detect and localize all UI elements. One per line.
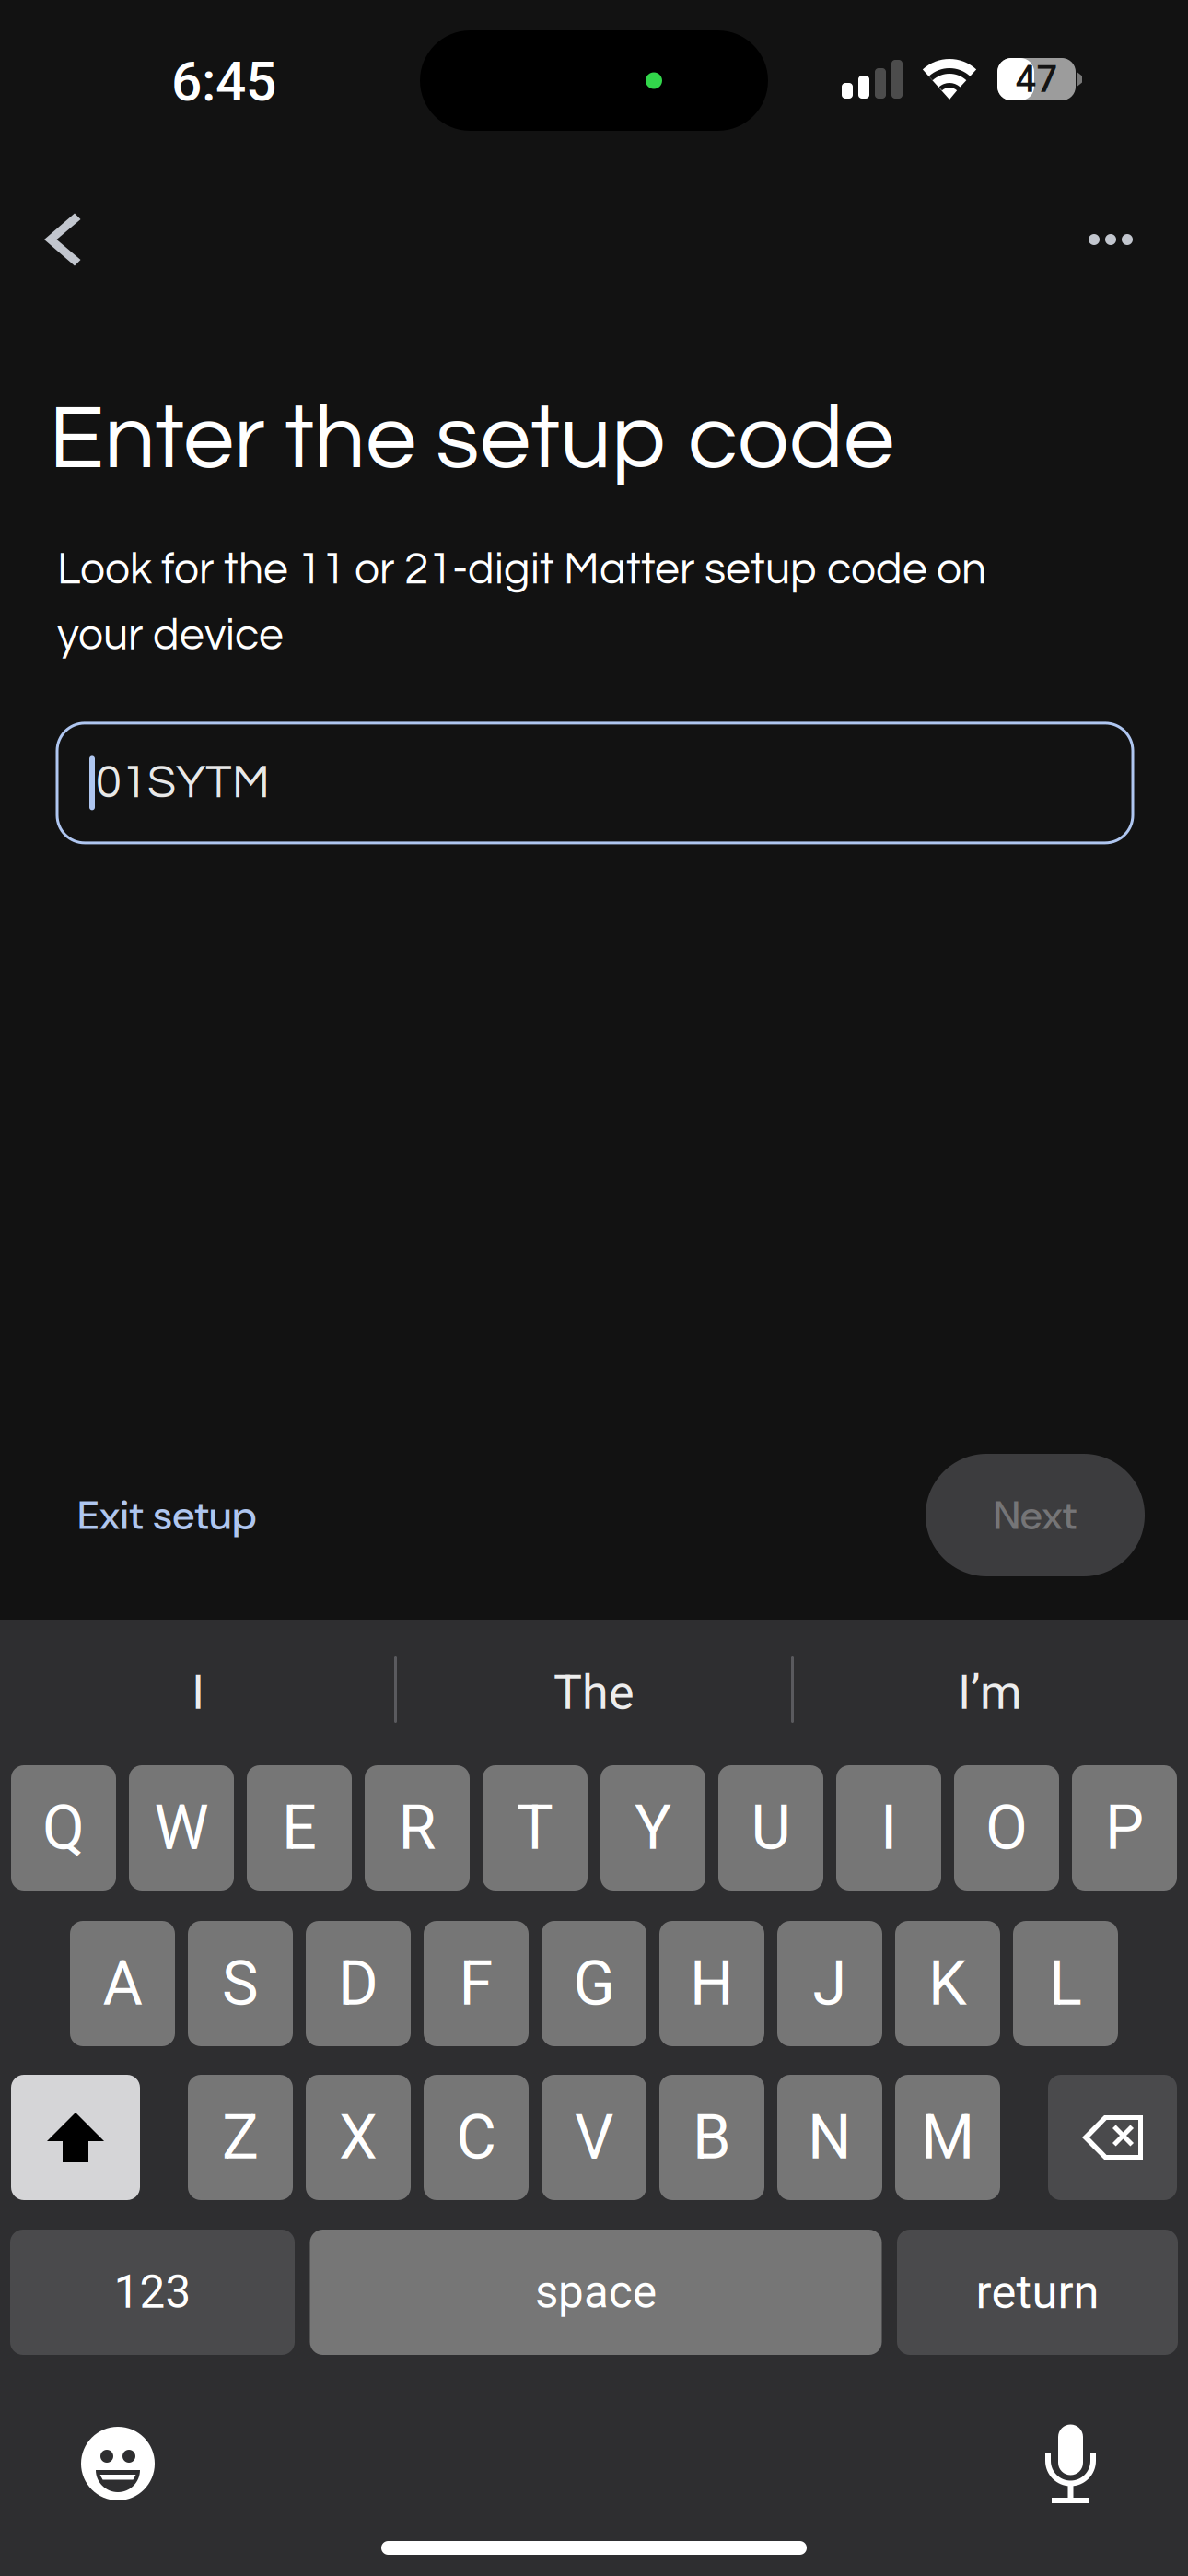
staticText: C — [456, 2101, 496, 2173]
staticText: O — [985, 1792, 1028, 1864]
button[interactable]: K — [895, 1921, 1000, 2046]
button[interactable]: G — [542, 1921, 646, 2046]
button[interactable]: R — [365, 1765, 470, 1891]
staticText: S — [222, 1948, 259, 2020]
staticText: 6:45 — [171, 50, 276, 114]
staticText: Y — [635, 1792, 671, 1864]
staticText: G — [573, 1948, 615, 2020]
staticText: Z — [222, 2101, 259, 2173]
button[interactable]: More options — [1057, 186, 1164, 293]
button[interactable]: A — [70, 1921, 175, 2046]
staticText: Next — [993, 1489, 1077, 1542]
button[interactable]: B — [659, 2075, 764, 2200]
button[interactable]: Emoji keyboard — [81, 2427, 155, 2500]
staticText: Enter the setup code — [49, 393, 894, 486]
staticText: U — [751, 1792, 791, 1864]
staticText: H — [690, 1948, 734, 2020]
staticText: I — [192, 1664, 204, 1720]
staticText: X — [339, 2101, 378, 2173]
staticText: A — [103, 1948, 142, 2020]
button[interactable]: N — [777, 2075, 882, 2200]
button[interactable]: P — [1072, 1765, 1177, 1891]
button[interactable]: Space — [310, 2230, 882, 2355]
button[interactable]: The — [396, 1641, 792, 1744]
staticText: Q — [42, 1792, 85, 1864]
staticText: F — [459, 1948, 493, 2020]
staticText: 47 — [1015, 58, 1058, 101]
staticText: M — [921, 2101, 974, 2173]
staticText: N — [808, 2101, 852, 2173]
button[interactable]: Y — [600, 1765, 705, 1891]
button[interactable]: S — [188, 1921, 293, 2046]
button[interactable]: Dictation — [1045, 2424, 1096, 2503]
staticText: your device — [57, 613, 284, 659]
button[interactable]: Delete — [1048, 2075, 1177, 2200]
button[interactable]: H — [659, 1921, 764, 2046]
staticText: I — [880, 1792, 897, 1864]
staticText: R — [398, 1792, 436, 1864]
staticText: return — [976, 2265, 1099, 2320]
button[interactable]: Shift — [11, 2075, 140, 2200]
button[interactable]: J — [777, 1921, 882, 2046]
staticText: L — [1049, 1948, 1082, 2020]
button[interactable]: Return — [897, 2230, 1178, 2355]
button[interactable]: E — [247, 1765, 352, 1891]
staticText: K — [928, 1948, 967, 2020]
staticText: E — [282, 1792, 317, 1864]
button[interactable]: L — [1013, 1921, 1118, 2046]
staticText: D — [338, 1948, 379, 2020]
staticText: B — [693, 2101, 731, 2173]
button[interactable]: O — [954, 1765, 1059, 1891]
button[interactable]: V — [542, 2075, 646, 2200]
staticText: I’m — [958, 1664, 1022, 1720]
button[interactable]: U — [718, 1765, 823, 1891]
staticText: J — [813, 1948, 847, 2020]
button[interactable]: C — [424, 2075, 529, 2200]
button[interactable]: Z — [188, 2075, 293, 2200]
staticText: space — [535, 2266, 657, 2319]
staticText: Exit setup — [77, 1489, 257, 1542]
button[interactable]: Back — [9, 186, 116, 293]
staticText: 123 — [114, 2266, 191, 2319]
button[interactable]: F — [424, 1921, 529, 2046]
staticText: V — [575, 2101, 613, 2173]
staticText: The — [553, 1664, 635, 1720]
button[interactable]: Numbers and symbols — [10, 2230, 295, 2355]
button[interactable]: Exit setup — [77, 1454, 271, 1576]
staticText: T — [517, 1792, 553, 1864]
staticText: W — [154, 1792, 209, 1864]
button[interactable]: I — [0, 1641, 396, 1744]
button[interactable]: W — [129, 1765, 234, 1891]
button[interactable]: I’m — [792, 1641, 1188, 1744]
button[interactable]: D — [306, 1921, 411, 2046]
staticText: P — [1105, 1792, 1144, 1864]
button[interactable]: M — [895, 2075, 1000, 2200]
button[interactable]: X — [306, 2075, 411, 2200]
button[interactable]: T — [483, 1765, 588, 1891]
staticText: 01SYTM — [96, 759, 270, 807]
button[interactable]: Q — [11, 1765, 116, 1891]
button[interactable]: Next — [926, 1454, 1145, 1576]
staticText: Look for the 11 or 21-digit Matter setup… — [57, 547, 986, 593]
button[interactable]: I — [836, 1765, 941, 1891]
